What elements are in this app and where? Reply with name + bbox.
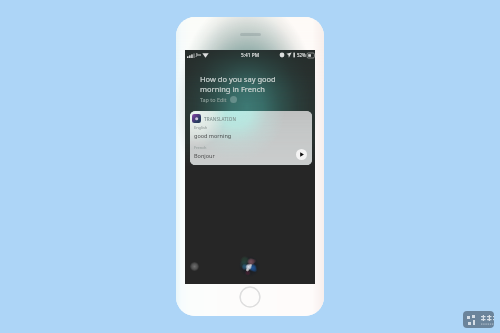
button[interactable]: Siri: [239, 256, 260, 277]
staticText: French: [194, 145, 207, 150]
button[interactable]: Play pronunciation: [296, 149, 307, 160]
button[interactable]: TRANSLATION: [190, 111, 312, 165]
staticText: English: [194, 125, 208, 130]
staticText: How do you say good: [200, 74, 276, 84]
staticText: Jio: [196, 52, 201, 58]
staticText: Bonjour: [194, 152, 215, 159]
staticText: good morning: [194, 132, 232, 139]
staticText: 52%: [297, 52, 306, 58]
staticText: Tap to Edit: [200, 96, 227, 103]
staticText: 5:41 PM: [241, 52, 260, 59]
staticText: morning in French: [200, 84, 265, 94]
button[interactable]: Help: [190, 262, 199, 271]
button[interactable]: Home: [239, 286, 261, 308]
staticText: TRANSLATION: [204, 116, 237, 122]
